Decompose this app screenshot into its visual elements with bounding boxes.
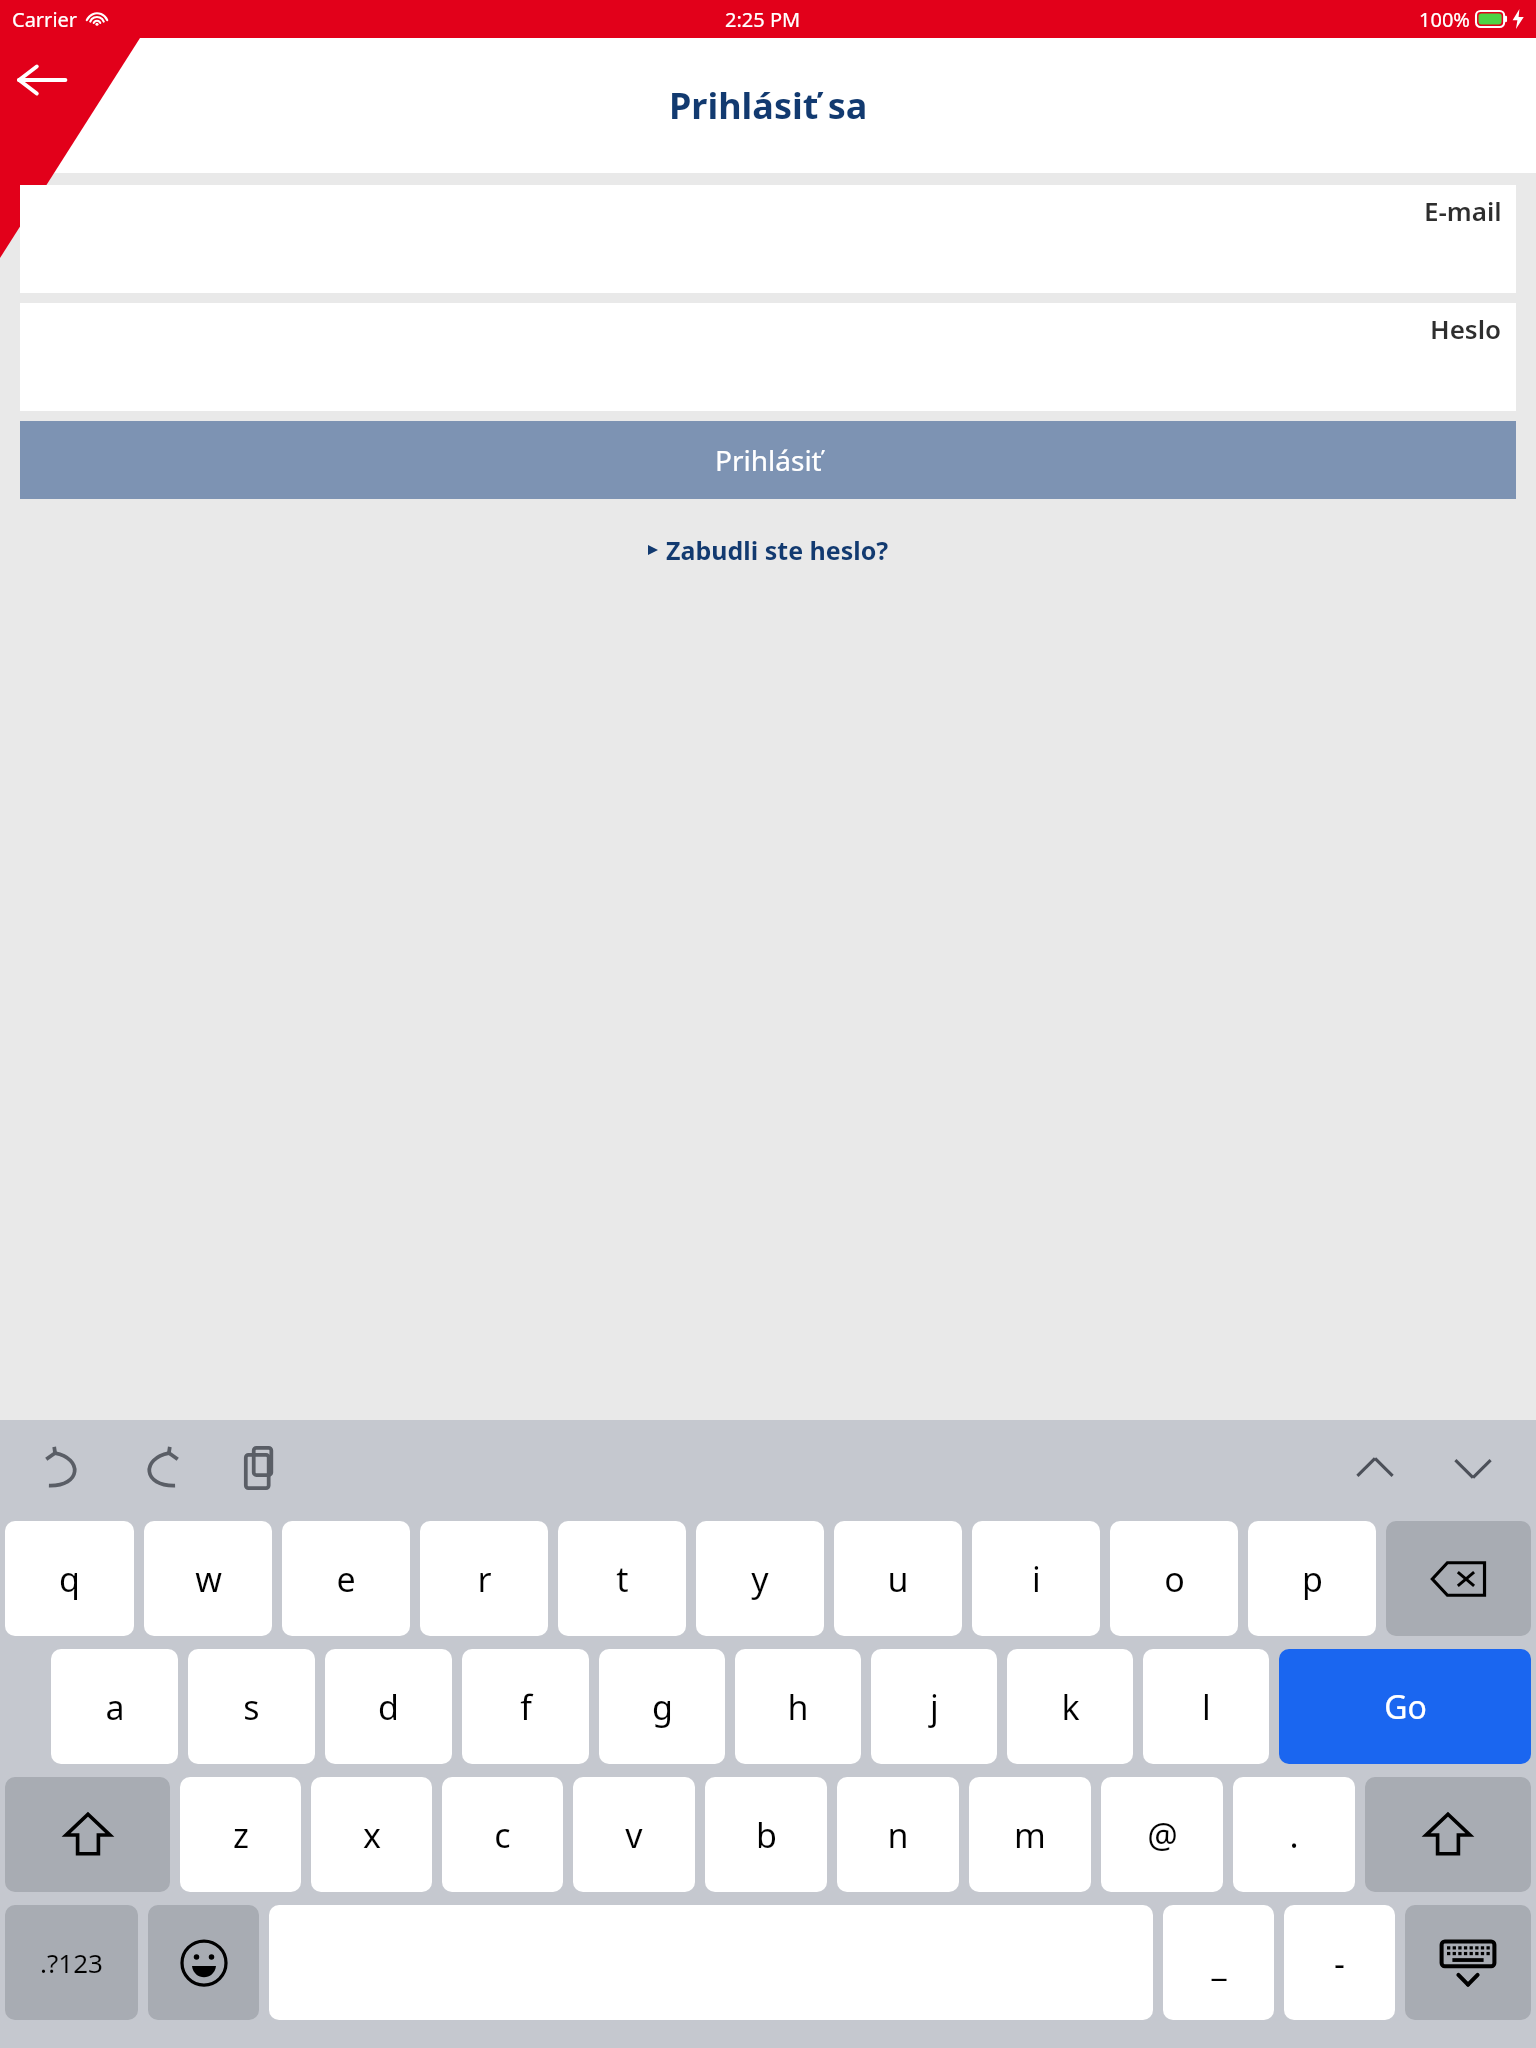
button[interactable]: w — [144, 1521, 272, 1636]
staticText: .?123 — [40, 1945, 103, 1980]
button[interactable]: Previous — [1346, 1439, 1404, 1497]
button[interactable]: h — [735, 1649, 861, 1764]
button[interactable]: e — [282, 1521, 410, 1636]
staticText: z — [233, 1812, 249, 1858]
staticText: s — [243, 1684, 260, 1730]
staticText: _ — [1211, 1940, 1227, 1986]
button[interactable]: Emoji — [148, 1905, 259, 2020]
staticText: Heslo — [1430, 311, 1502, 346]
button[interactable]: Go — [1279, 1649, 1531, 1764]
button[interactable]: Next — [1444, 1439, 1502, 1497]
button[interactable]: z — [180, 1777, 301, 1892]
button[interactable]: Shift — [5, 1777, 170, 1892]
button[interactable]: n — [837, 1777, 959, 1892]
staticText: q — [59, 1556, 80, 1602]
button[interactable]: Paste — [230, 1439, 288, 1497]
button[interactable]: Zabudli ste heslo? — [640, 527, 897, 573]
button[interactable]: . — [1233, 1777, 1355, 1892]
staticText: E-mail — [1424, 193, 1502, 228]
button[interactable]: q — [5, 1521, 134, 1636]
staticText: i — [1032, 1556, 1041, 1602]
button[interactable]: d — [325, 1649, 452, 1764]
staticText: g — [652, 1684, 673, 1730]
staticText: x — [363, 1812, 381, 1858]
staticText: . — [1289, 1812, 1299, 1858]
staticText: n — [887, 1812, 909, 1858]
button[interactable]: v — [573, 1777, 695, 1892]
staticText: h — [787, 1684, 809, 1730]
button[interactable]: Prihlásiť — [20, 421, 1516, 499]
staticText: j — [930, 1684, 939, 1730]
button[interactable]: i — [972, 1521, 1100, 1636]
button[interactable]: r — [420, 1521, 548, 1636]
staticText: 100% — [1419, 6, 1470, 33]
button[interactable]: @ — [1101, 1777, 1223, 1892]
button[interactable]: k — [1007, 1649, 1133, 1764]
staticText: Prihlásiť sa — [669, 81, 868, 130]
staticText: - — [1334, 1940, 1345, 1986]
staticText: t — [616, 1556, 629, 1602]
staticText: v — [625, 1812, 643, 1858]
button[interactable]: - — [1284, 1905, 1395, 2020]
staticText: k — [1061, 1684, 1080, 1730]
staticText: Prihlásiť — [715, 441, 822, 479]
staticText: o — [1164, 1556, 1185, 1602]
button[interactable]: a — [51, 1649, 178, 1764]
button[interactable]: g — [599, 1649, 725, 1764]
button[interactable]: Undo — [34, 1439, 92, 1497]
staticText: Carrier — [12, 6, 78, 33]
staticText: a — [105, 1684, 125, 1730]
staticText: u — [887, 1556, 909, 1602]
staticText: b — [756, 1812, 777, 1858]
button[interactable]: Hide keyboard — [1405, 1905, 1531, 2020]
button[interactable]: .?123 — [5, 1905, 138, 2020]
staticText: r — [477, 1556, 492, 1602]
staticText: f — [520, 1684, 532, 1730]
button[interactable]: Backspace — [1386, 1521, 1531, 1636]
staticText: 2:25 PM — [725, 6, 801, 33]
button[interactable]: Heslo — [20, 303, 1516, 411]
staticText: @ — [1147, 1812, 1178, 1858]
button[interactable]: p — [1248, 1521, 1376, 1636]
button[interactable]: t — [558, 1521, 686, 1636]
button[interactable]: y — [696, 1521, 824, 1636]
button[interactable]: u — [834, 1521, 962, 1636]
button[interactable]: x — [311, 1777, 432, 1892]
staticText: d — [378, 1684, 399, 1730]
button[interactable]: Shift right — [1365, 1777, 1531, 1892]
button[interactable]: o — [1110, 1521, 1238, 1636]
button[interactable]: f — [462, 1649, 589, 1764]
staticText: e — [336, 1556, 356, 1602]
staticText: c — [494, 1812, 511, 1858]
button[interactable]: E-mail — [20, 185, 1516, 293]
staticText: m — [1014, 1812, 1046, 1858]
button[interactable]: b — [705, 1777, 827, 1892]
button[interactable]: c — [442, 1777, 563, 1892]
button[interactable]: Back — [10, 48, 74, 112]
staticText: Go — [1384, 1685, 1427, 1729]
button[interactable]: _ — [1163, 1905, 1274, 2020]
staticText: p — [1302, 1556, 1323, 1602]
button[interactable]: l — [1143, 1649, 1269, 1764]
staticText: y — [751, 1556, 769, 1602]
button[interactable]: m — [969, 1777, 1091, 1892]
staticText: l — [1202, 1684, 1211, 1730]
button[interactable]: s — [188, 1649, 315, 1764]
button[interactable]: Redo — [132, 1439, 190, 1497]
staticText: w — [195, 1556, 222, 1602]
button[interactable]: j — [871, 1649, 997, 1764]
staticText: Zabudli ste heslo? — [666, 533, 889, 567]
